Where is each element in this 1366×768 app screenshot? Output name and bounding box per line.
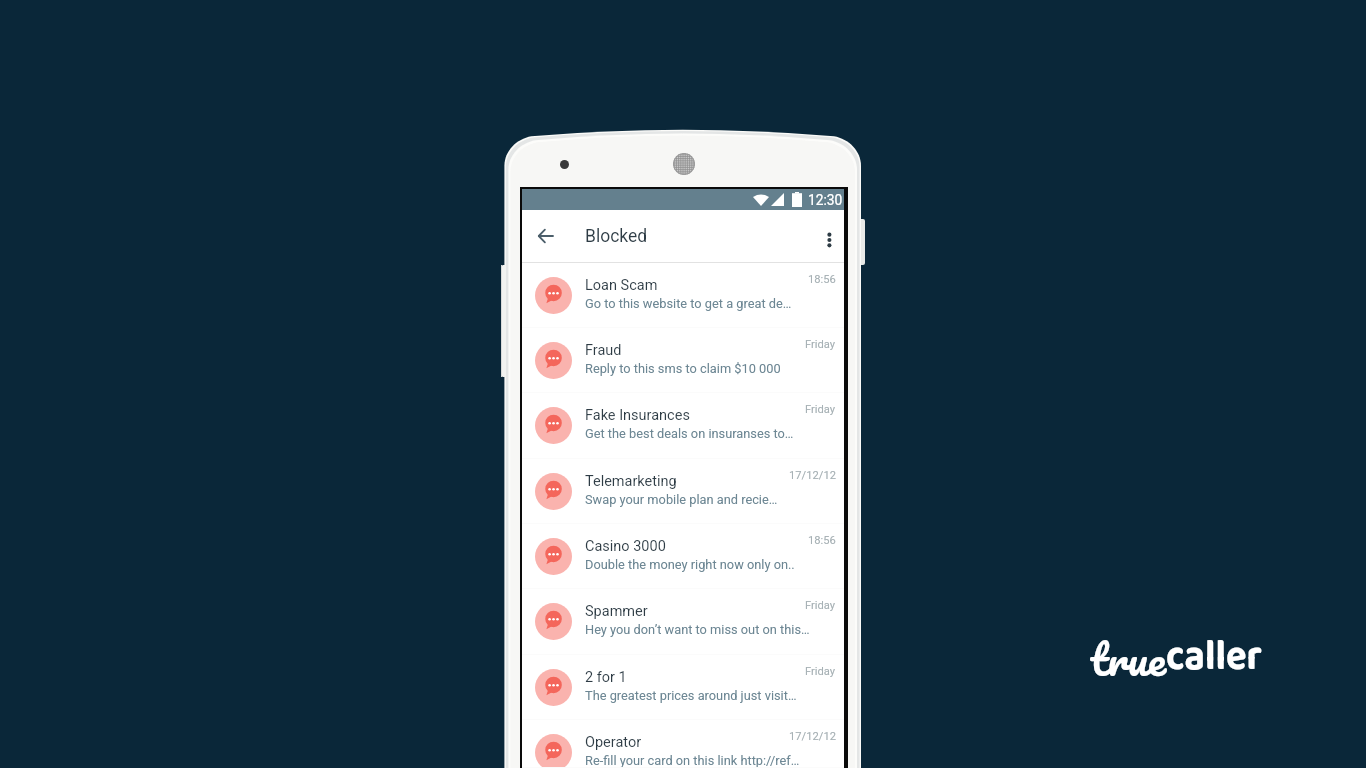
button[interactable]: Operator (522, 720, 844, 768)
staticText: Fraud (585, 342, 817, 359)
staticText: Operator (585, 734, 817, 751)
staticText: Re-fill your card on this link http://re… (585, 753, 830, 768)
staticText: 12:30 (808, 192, 843, 208)
staticText: Friday (805, 665, 836, 678)
staticText: Blocked (585, 226, 648, 247)
staticText: Friday (805, 338, 836, 351)
staticText: Hey you don’t want to miss out on this… (585, 622, 830, 637)
button[interactable]: Spammer (522, 589, 844, 655)
staticText: Loan Scam (585, 277, 817, 294)
staticText: Get the best deals on insuranses to… (585, 426, 830, 441)
button[interactable]: Fake Insurances (522, 393, 844, 459)
staticText: Friday (805, 403, 836, 416)
staticText: 17/12/12 (789, 469, 836, 482)
staticText: caller (1166, 621, 1262, 692)
staticText: Telemarketing (585, 473, 817, 490)
staticText: Friday (805, 599, 836, 612)
button[interactable]: Telemarketing (522, 459, 844, 524)
staticText: Spammer (585, 603, 817, 620)
staticText: Casino 3000 (585, 538, 817, 555)
button[interactable]: Back (522, 210, 566, 262)
button[interactable]: Fraud (522, 328, 844, 393)
staticText: 18:56 (808, 273, 836, 286)
staticText: Double the money right now only on.. (585, 557, 830, 572)
button[interactable]: Casino 3000 (522, 524, 844, 589)
button[interactable]: 2 for 1 (522, 655, 844, 720)
staticText: Go to this website to get a great de… (585, 296, 830, 311)
staticText: Reply to this sms to claim $10 000 (585, 361, 830, 376)
staticText: Swap your mobile plan and recie… (585, 492, 830, 507)
staticText: true (1090, 623, 1166, 694)
button[interactable]: More options (804, 210, 844, 262)
button[interactable]: Loan Scam (522, 263, 844, 328)
staticText: The greatest prices around just visit… (585, 688, 830, 703)
staticText: 17/12/12 (789, 730, 836, 743)
staticText: 18:56 (808, 534, 836, 547)
staticText: Fake Insurances (585, 407, 817, 424)
staticText: 2 for 1 (585, 669, 817, 686)
